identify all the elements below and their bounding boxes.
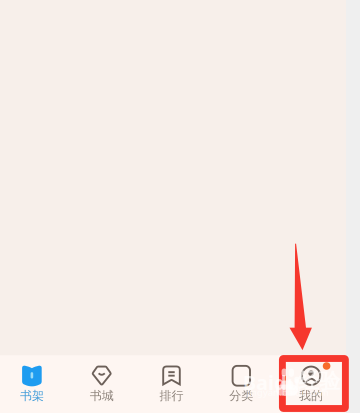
button[interactable]: 书城 (67, 355, 137, 413)
button[interactable]: 书架 (0, 355, 67, 413)
button[interactable]: 分类 (206, 355, 276, 413)
staticText: Baidu (243, 369, 300, 396)
staticText: 书城 (90, 388, 114, 403)
button[interactable]: 我的 (276, 355, 346, 413)
staticText: 排行 (159, 388, 183, 403)
staticText: jingyan.baidu.com (247, 386, 329, 398)
staticText: 我的 (299, 388, 323, 403)
staticText: 书架 (20, 388, 44, 403)
staticText: 经验 (298, 368, 340, 394)
staticText: 分类 (229, 388, 253, 403)
button[interactable]: 排行 (137, 355, 206, 413)
